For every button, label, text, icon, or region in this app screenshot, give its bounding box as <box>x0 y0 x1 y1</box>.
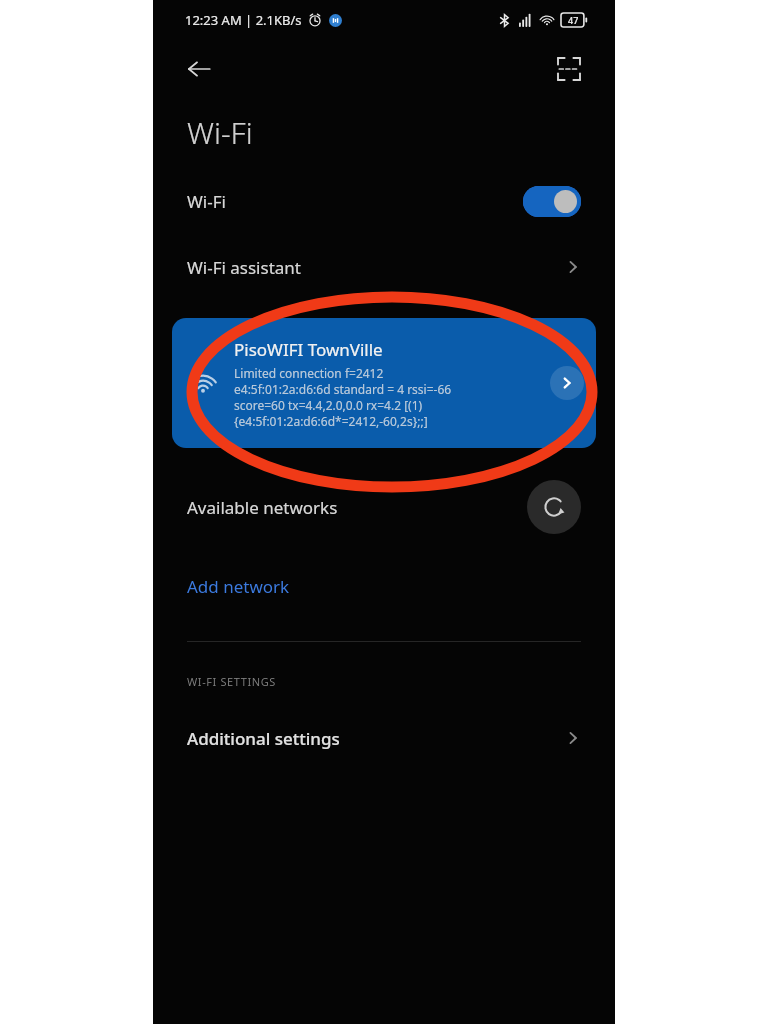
button[interactable]: PisoWIFI TownVille <box>172 318 596 448</box>
staticText: Additional settings <box>187 727 340 750</box>
staticText: Wi-Fi <box>187 190 226 213</box>
staticText: WI-FI SETTINGS <box>187 674 276 689</box>
button[interactable]: Back <box>175 45 223 93</box>
staticText: Add network <box>187 575 290 598</box>
button[interactable]: Network details <box>550 366 584 400</box>
staticText: Limited connection f=2412 <box>234 365 384 381</box>
button[interactable]: Refresh <box>527 480 581 534</box>
button[interactable]: Wi-Fi <box>153 179 615 223</box>
staticText: e4:5f:01:2a:d6:6d standard = 4 rssi=-66 <box>234 381 452 397</box>
staticText: {e4:5f:01:2a:d6:6d*=2412,-60,2s};;] <box>234 413 428 429</box>
button[interactable]: Add network <box>153 566 615 606</box>
staticText: Wi-Fi <box>187 112 253 153</box>
staticText: score=60 tx=4.4,2.0,0.0 rx=4.2 [(1) <box>234 397 423 413</box>
staticText: Wi-Fi assistant <box>187 256 301 279</box>
staticText: PisoWIFI TownVille <box>234 338 383 361</box>
button[interactable]: Scan QR code <box>545 45 593 93</box>
staticText: Available networks <box>187 496 338 519</box>
staticText: 47 <box>568 14 579 26</box>
button[interactable]: Additional settings <box>153 714 615 762</box>
staticText: 12:23 AM | 2.1KB/s <box>185 11 302 29</box>
button[interactable]: Wi-Fi assistant <box>153 245 615 289</box>
